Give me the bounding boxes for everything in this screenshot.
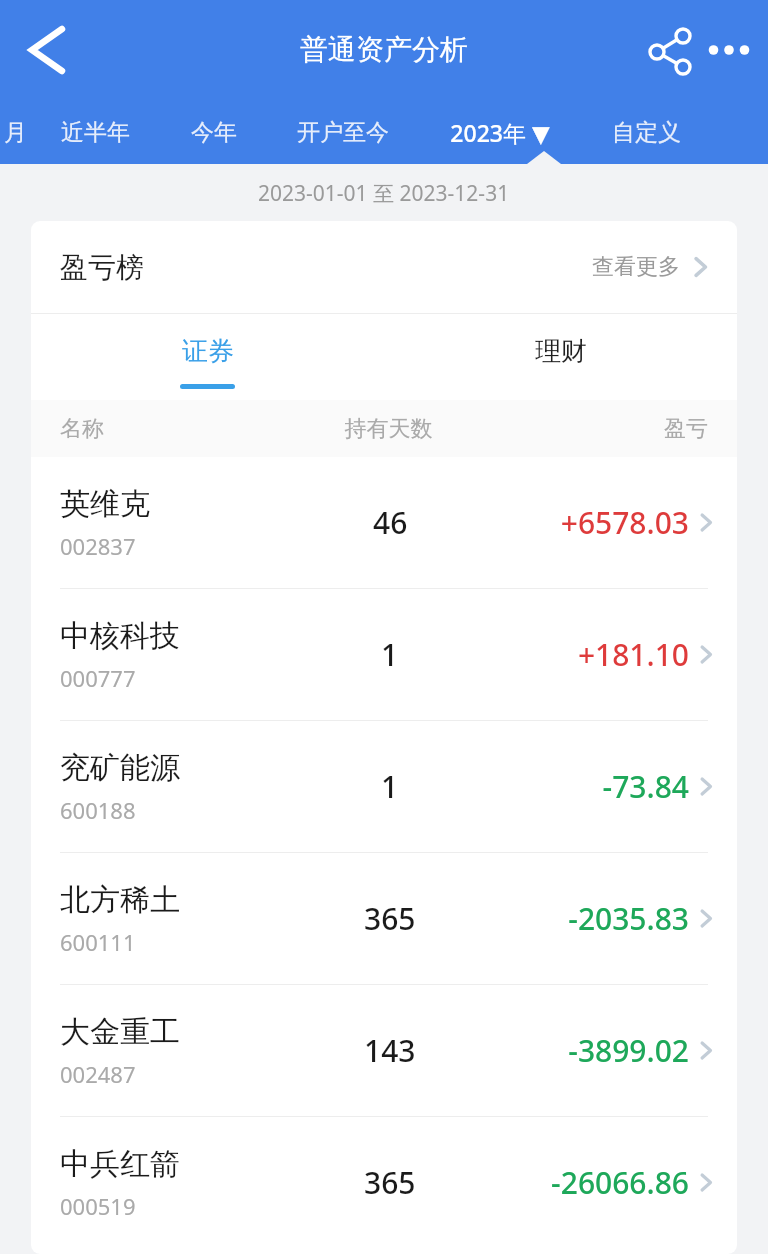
button[interactable]: 2023年 ▼ (418, 100, 582, 164)
staticText: 365 (364, 898, 416, 939)
staticText: 名称 (60, 415, 294, 443)
staticText: 月 (4, 118, 27, 147)
button[interactable]: Back (14, 19, 76, 81)
staticText: +181.10 (577, 634, 689, 675)
staticText: 中核科技 (60, 617, 180, 655)
button[interactable]: 开户至今 (268, 100, 418, 164)
button[interactable]: 中核科技 (31, 589, 737, 720)
staticText: 中兵红箭 (60, 1145, 180, 1183)
button[interactable]: 证券 (31, 314, 384, 400)
button[interactable]: 理财 (384, 314, 737, 400)
staticText: -2035.83 (568, 898, 689, 939)
button[interactable]: 中兵红箭 (31, 1117, 737, 1248)
staticText: 普通资产分析 (300, 32, 468, 67)
staticText: 600111 (60, 927, 136, 957)
staticText: 查看更多 (592, 253, 680, 281)
staticText: 2023年 ▼ (450, 117, 550, 148)
staticText: 今年 (191, 118, 237, 147)
staticText: 证券 (182, 335, 234, 368)
staticText: 1 (381, 634, 399, 675)
staticText: 46 (373, 502, 408, 543)
button[interactable]: 查看更多 (568, 241, 737, 293)
button[interactable]: 月 (0, 100, 30, 164)
staticText: 600188 (60, 795, 136, 825)
staticText: 1 (381, 766, 399, 807)
button[interactable]: 自定义 (582, 100, 710, 164)
button[interactable]: 近半年 (30, 100, 160, 164)
staticText: 365 (364, 1162, 416, 1203)
staticText: 000519 (60, 1191, 136, 1221)
staticText: 英维克 (60, 485, 150, 523)
button[interactable]: More options (700, 21, 758, 79)
staticText: +6578.03 (560, 502, 689, 543)
staticText: 盈亏 (483, 415, 708, 443)
staticText: 000777 (60, 663, 136, 693)
staticText: 002487 (60, 1059, 136, 1089)
staticText: 理财 (535, 335, 587, 368)
button[interactable]: 英维克 (31, 457, 737, 588)
button[interactable]: 今年 (160, 100, 268, 164)
staticText: -26066.86 (551, 1162, 689, 1203)
button[interactable]: 兖矿能源 (31, 721, 737, 852)
staticText: 开户至今 (297, 118, 389, 147)
staticText: 近半年 (61, 118, 130, 147)
staticText: 北方稀土 (60, 881, 180, 919)
staticText: 143 (364, 1030, 416, 1071)
staticText: -73.84 (602, 766, 689, 807)
staticText: 持有天数 (294, 415, 483, 443)
staticText: 002837 (60, 531, 136, 561)
staticText: -3899.02 (568, 1030, 689, 1071)
staticText: 2023-01-01 至 2023-12-31 (258, 179, 510, 208)
staticText: 兖矿能源 (60, 749, 180, 787)
staticText: 盈亏榜 (60, 250, 144, 285)
button[interactable]: Share (642, 21, 700, 79)
staticText: 自定义 (612, 118, 681, 147)
button[interactable]: 北方稀土 (31, 853, 737, 984)
button[interactable]: 大金重工 (31, 985, 737, 1116)
staticText: 大金重工 (60, 1013, 180, 1051)
